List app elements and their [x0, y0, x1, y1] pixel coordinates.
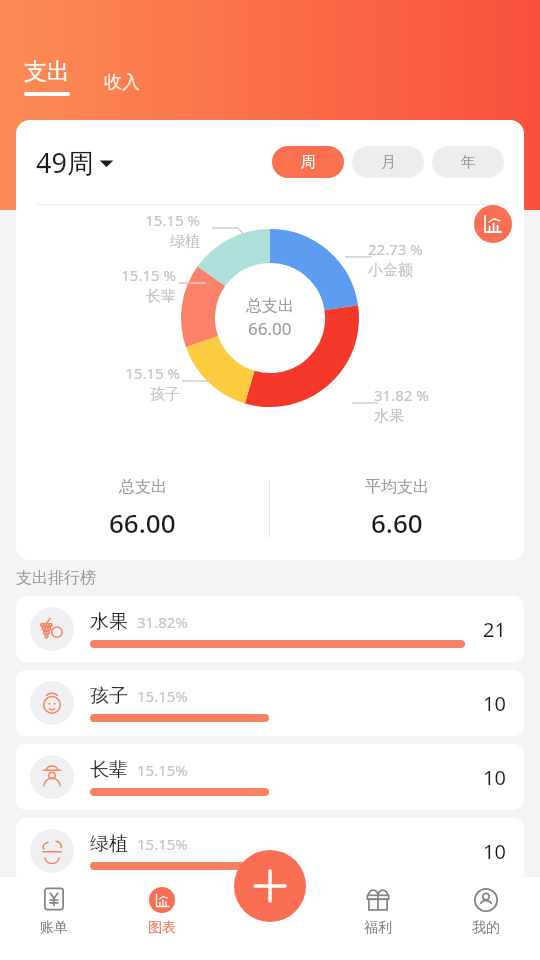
staticText: 收入 [104, 71, 140, 94]
staticText: 15.15% [137, 686, 188, 706]
staticText: 水果 [90, 610, 128, 634]
button[interactable]: 年 [432, 146, 504, 178]
button[interactable]: 图表 [108, 877, 216, 960]
staticText: 长辈 [90, 758, 128, 782]
staticText: 22.73 % [368, 239, 423, 259]
staticText: 绿植 [170, 232, 200, 251]
button[interactable]: 水果 [16, 596, 524, 662]
staticText: 水果 [374, 407, 404, 426]
button[interactable]: 我的 [432, 877, 540, 960]
staticText: 66.00 [109, 505, 176, 540]
staticText: 15.15% [137, 834, 188, 854]
button[interactable]: 周 [272, 146, 344, 178]
staticText: 总支出 [246, 296, 294, 316]
button[interactable]: 长辈 [16, 744, 524, 810]
staticText: 31.82% [137, 612, 188, 632]
button[interactable]: 绿植 [16, 818, 524, 884]
button[interactable]: 支出 [20, 57, 74, 96]
staticText: 平均支出 [365, 477, 429, 497]
staticText: 小金额 [368, 261, 413, 280]
button[interactable]: 49周 [36, 144, 114, 181]
staticText: 福利 [364, 919, 392, 937]
staticText: 49周 [36, 144, 94, 181]
staticText: 长辈 [146, 287, 176, 306]
staticText: 支出排行榜 [16, 568, 96, 588]
staticText: 支出 [24, 57, 70, 86]
staticText: 10 [483, 764, 506, 791]
staticText: 6.60 [371, 505, 423, 540]
staticText: 15.15% [137, 760, 188, 780]
staticText: 15.15 % [121, 265, 176, 285]
staticText: 孩子 [150, 385, 180, 404]
button[interactable]: 账单 [0, 877, 108, 960]
staticText: 21 [483, 616, 506, 643]
staticText: 年 [461, 153, 476, 172]
staticText: 账单 [40, 919, 68, 937]
staticText: 月 [381, 153, 396, 172]
staticText: 总支出 [119, 477, 167, 497]
staticText: 我的 [472, 919, 500, 937]
staticText: 66.00 [248, 317, 292, 340]
staticText: 15.15 % [125, 363, 180, 383]
staticText: 图表 [148, 919, 176, 937]
button[interactable]: 收入 [98, 69, 146, 96]
button[interactable]: 孩子 [16, 670, 524, 736]
button[interactable]: 福利 [324, 877, 432, 960]
staticText: 绿植 [90, 832, 128, 856]
button[interactable]: Switch chart type [474, 205, 512, 243]
staticText: 孩子 [90, 684, 128, 708]
button[interactable]: 月 [352, 146, 424, 178]
staticText: 31.82 % [374, 385, 429, 405]
button[interactable]: Add record [234, 850, 306, 922]
staticText: 10 [483, 838, 506, 865]
staticText: 周 [301, 153, 316, 172]
staticText: 15.15 % [145, 210, 200, 230]
staticText: 10 [483, 690, 506, 717]
